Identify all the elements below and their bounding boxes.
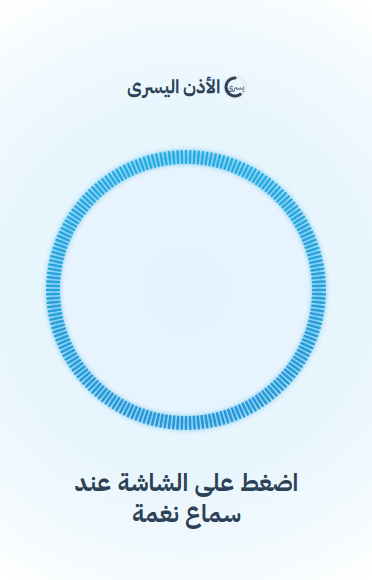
staticText: اضغط على الشاشة عند xyxy=(74,465,298,501)
staticText: يسرى xyxy=(226,81,243,93)
staticText: الأذن اليسرى xyxy=(126,73,219,101)
staticText: سماع نغمة xyxy=(131,496,240,532)
button[interactable]: الأذن اليسرى xyxy=(126,73,245,101)
